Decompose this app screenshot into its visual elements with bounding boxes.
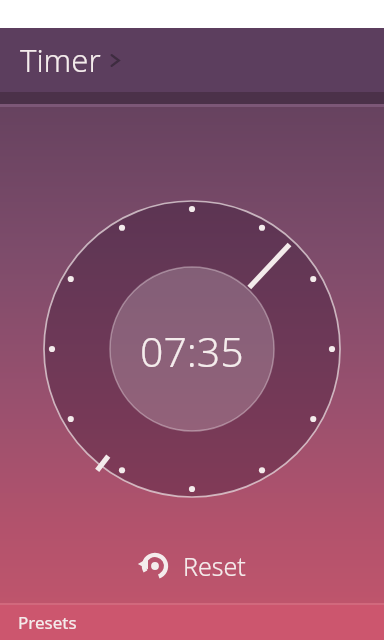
button[interactable]: Timer — [0, 28, 384, 92]
button[interactable]: Presets — [0, 605, 384, 640]
staticText: Presets — [18, 611, 77, 634]
staticText: Timer — [20, 39, 101, 81]
button[interactable]: Reset — [138, 549, 246, 583]
button[interactable]: Timer dial, 07:35 remaining — [0, 0, 384, 640]
staticText: 07:35 — [140, 323, 244, 379]
staticText: Reset — [183, 549, 246, 583]
